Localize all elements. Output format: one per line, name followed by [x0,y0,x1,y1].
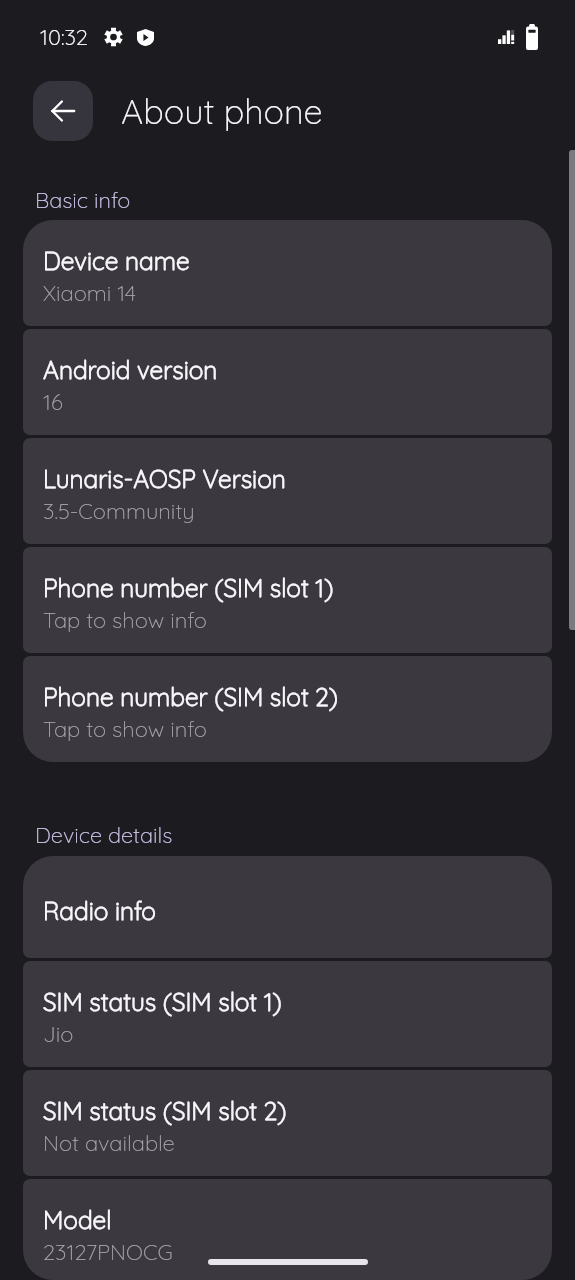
staticText: Not available [43,1129,175,1157]
staticText: 16 [43,388,63,416]
button[interactable]: SIM status (SIM slot 1) [23,961,552,1067]
button[interactable]: Radio info [23,856,552,958]
button[interactable]: Model [23,1179,552,1280]
button[interactable]: Android version [23,329,552,435]
staticText: Tap to show info [43,715,207,743]
staticText: About phone [121,90,323,133]
staticText: SIM status (SIM slot 1) [43,986,282,1017]
staticText: Model [43,1204,112,1235]
staticText: Xiaomi 14 [43,279,136,307]
button[interactable]: Phone number (SIM slot 2) [23,656,552,762]
staticText: Radio info [43,895,156,926]
button[interactable]: Lunaris-AOSP Version [23,438,552,544]
staticText: 10:32 [40,23,88,51]
staticText: Tap to show info [43,606,207,634]
staticText: Phone number (SIM slot 1) [43,572,334,603]
button[interactable]: Phone number (SIM slot 1) [23,547,552,653]
staticText: SIM status (SIM slot 2) [43,1095,287,1126]
button[interactable]: Back [33,81,93,141]
staticText: Phone number (SIM slot 2) [43,681,338,712]
staticText: Lunaris-AOSP Version [43,463,286,494]
staticText: Device details [35,821,173,848]
staticText: Android version [43,354,218,385]
staticText: 3.5-Community [43,497,195,525]
staticText: Device name [43,245,190,276]
staticText: Jio [43,1020,74,1048]
staticText: 23127PNOCG [43,1238,173,1266]
button[interactable]: SIM status (SIM slot 2) [23,1070,552,1176]
button[interactable]: Device name [23,220,552,326]
staticText: Basic info [35,186,131,213]
